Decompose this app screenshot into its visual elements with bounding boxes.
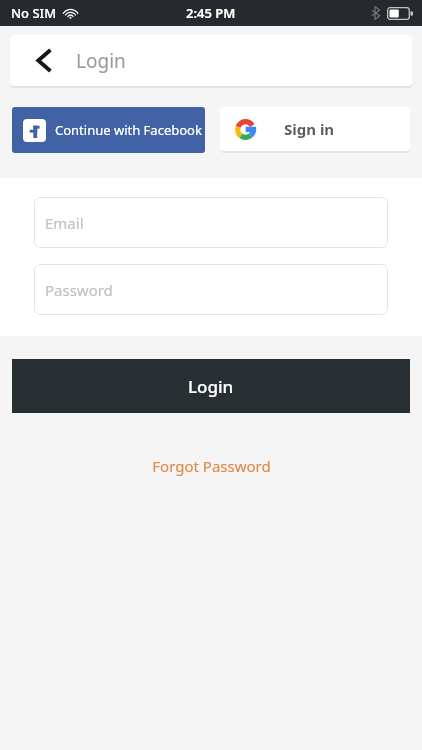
staticText: No SIM <box>11 4 57 22</box>
button[interactable]: Back <box>10 35 76 86</box>
staticText: Password <box>45 280 113 300</box>
staticText: Email <box>45 213 84 233</box>
button[interactable]: Continue with Facebook <box>12 107 205 153</box>
staticText: Sign in <box>284 119 335 139</box>
staticText: Login <box>188 375 234 398</box>
button[interactable]: Login <box>12 359 410 413</box>
staticText: Continue with Facebook <box>55 121 202 139</box>
button[interactable]: Sign in <box>220 107 410 151</box>
staticText: 2:45 PM <box>186 4 236 22</box>
staticText: Login <box>76 48 126 74</box>
staticText: Forgot Password <box>152 456 271 476</box>
button[interactable]: Password <box>34 264 388 315</box>
button[interactable]: Forgot Password <box>136 450 287 482</box>
button[interactable]: Email <box>34 197 388 248</box>
